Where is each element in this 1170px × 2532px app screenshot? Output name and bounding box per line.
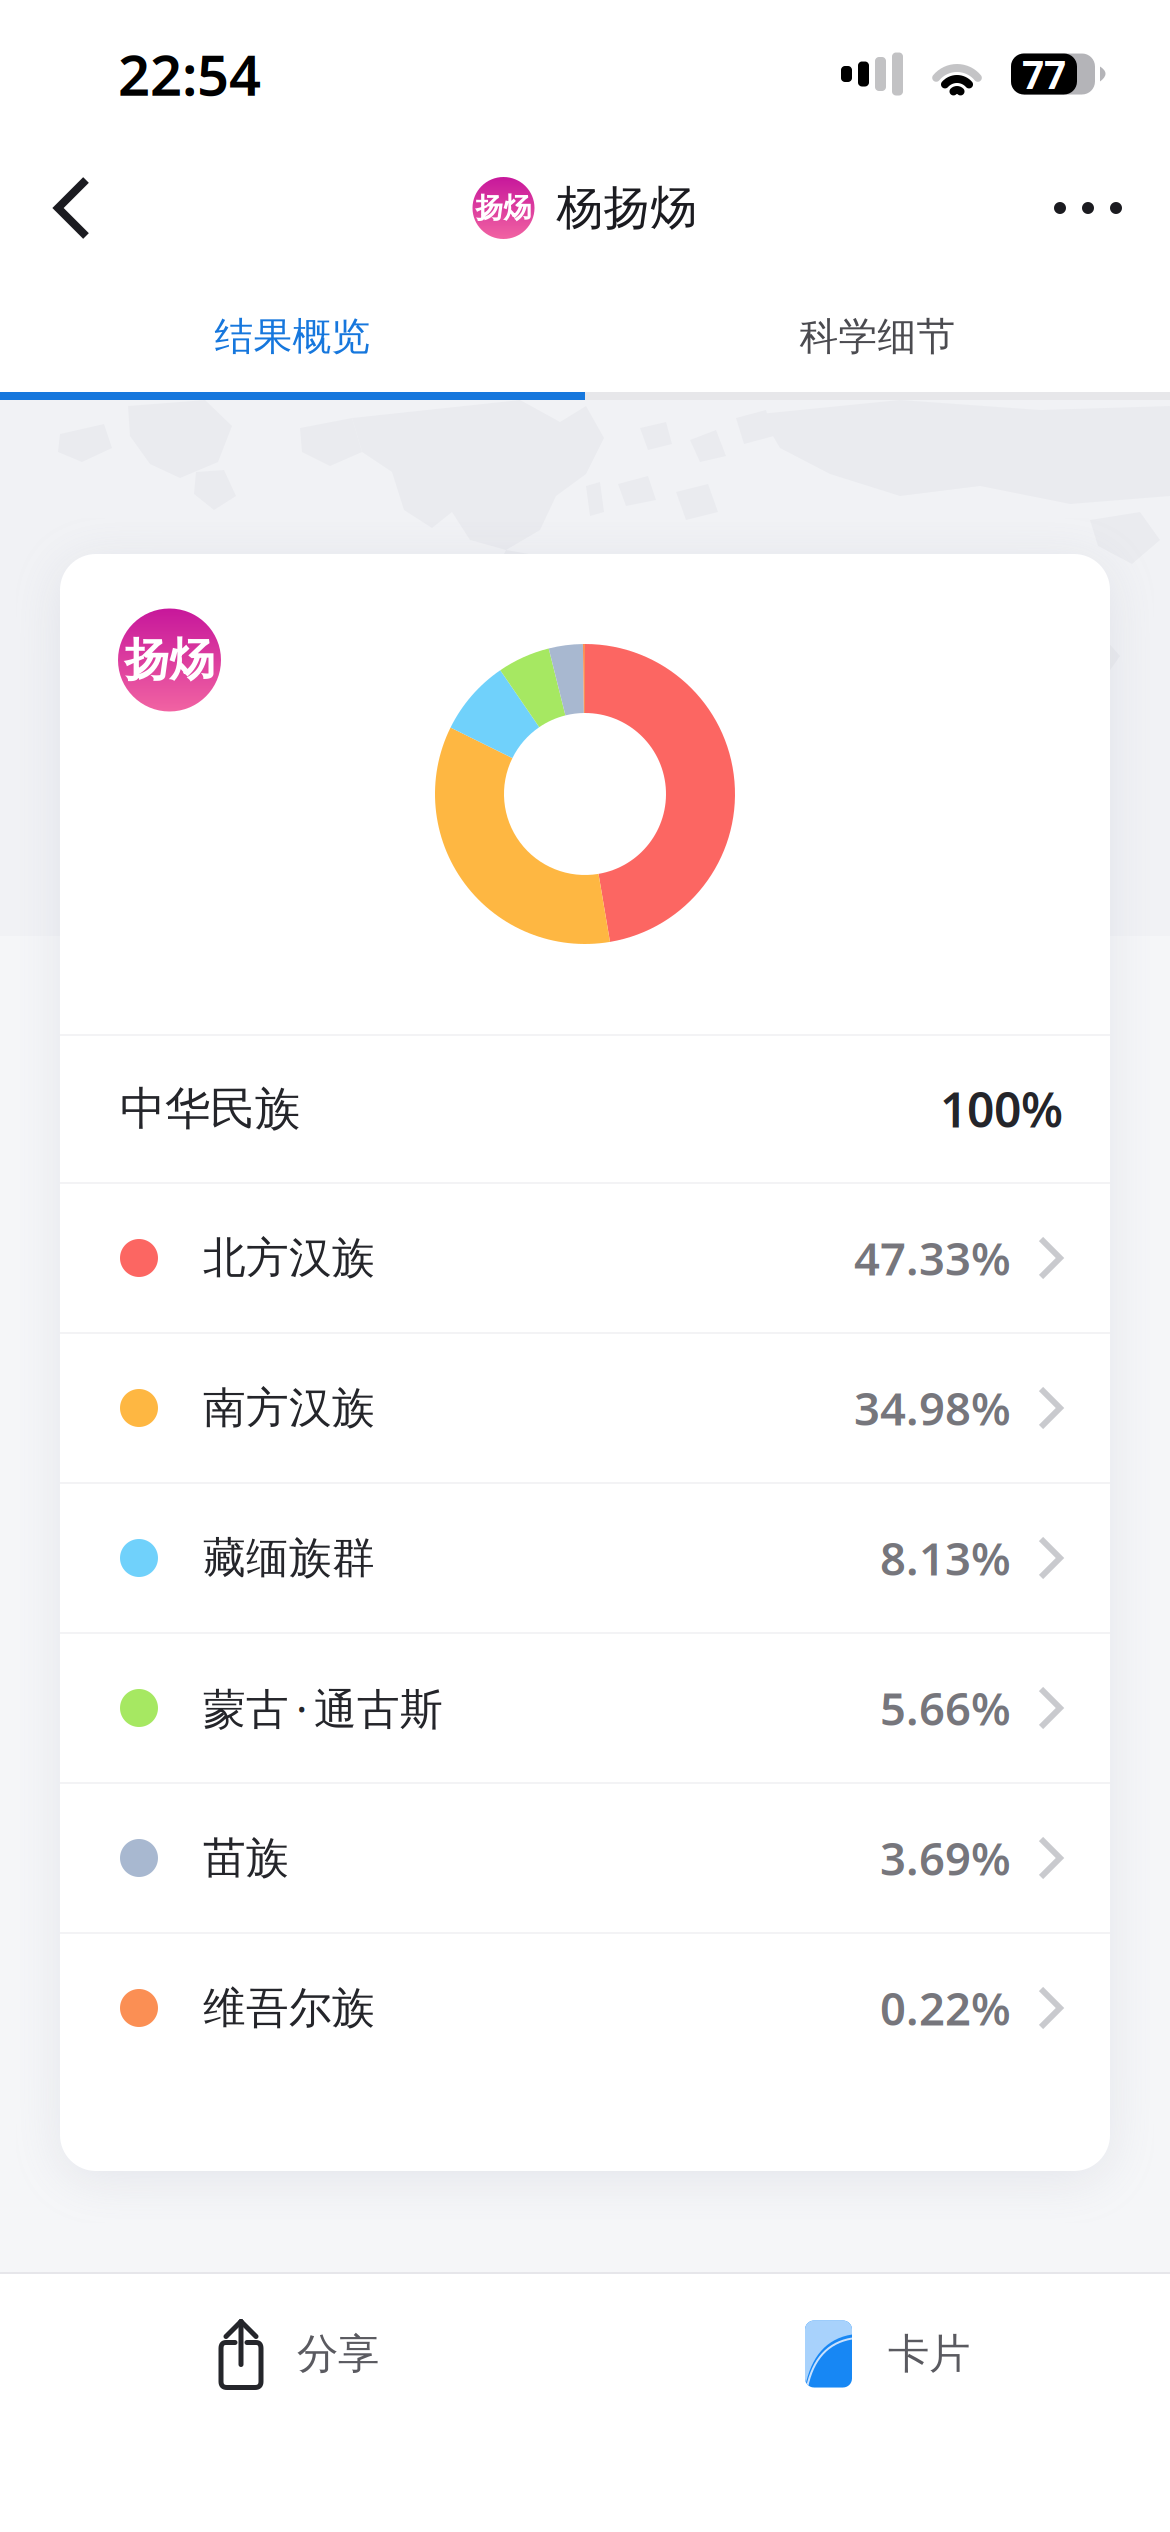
staticText: 北方汉族 <box>203 1232 375 1284</box>
staticText: 扬炀 <box>124 632 214 688</box>
staticText: 77 <box>1022 48 1066 100</box>
button[interactable]: 南方汉族 <box>60 1334 1110 1482</box>
staticText: 22:54 <box>118 37 261 111</box>
staticText: 8.13% <box>880 1528 1011 1588</box>
button[interactable]: 分享 <box>0 2274 585 2428</box>
button[interactable]: 蒙古 · 通古斯 <box>60 1634 1110 1782</box>
staticText: 47.33% <box>854 1228 1011 1288</box>
staticText: 分享 <box>297 2329 379 2379</box>
staticText: 5.66% <box>880 1678 1011 1738</box>
staticText: 结果概览 <box>214 313 370 360</box>
button[interactable]: 卡片 <box>585 2274 1170 2428</box>
button[interactable]: 结果概览 <box>0 268 585 392</box>
staticText: 蒙古 · 通古斯 <box>203 1680 443 1736</box>
button[interactable]: 科学细节 <box>585 268 1170 392</box>
button[interactable]: 藏缅族群 <box>60 1484 1110 1632</box>
staticText: 卡片 <box>888 2329 970 2379</box>
button[interactable]: 中华民族 <box>60 1036 1110 1182</box>
staticText: 0.22% <box>880 1978 1011 2038</box>
button[interactable]: More <box>1022 148 1154 268</box>
button[interactable]: 北方汉族 <box>60 1184 1110 1332</box>
staticText: 扬炀 <box>475 191 531 225</box>
staticText: 100% <box>940 1077 1063 1141</box>
staticText: 南方汉族 <box>203 1382 375 1434</box>
staticText: 34.98% <box>854 1378 1011 1438</box>
staticText: 科学细节 <box>799 313 955 360</box>
staticText: 藏缅族群 <box>203 1532 375 1584</box>
staticText: 杨扬炀 <box>556 179 697 237</box>
button[interactable]: Back <box>16 148 128 268</box>
button[interactable]: 维吾尔族 <box>60 1934 1110 2082</box>
staticText: 3.69% <box>880 1828 1011 1888</box>
staticText: 维吾尔族 <box>203 1982 375 2034</box>
staticText: 苗族 <box>203 1832 289 1884</box>
button[interactable]: 苗族 <box>60 1784 1110 1932</box>
staticText: 中华民族 <box>120 1081 300 1137</box>
